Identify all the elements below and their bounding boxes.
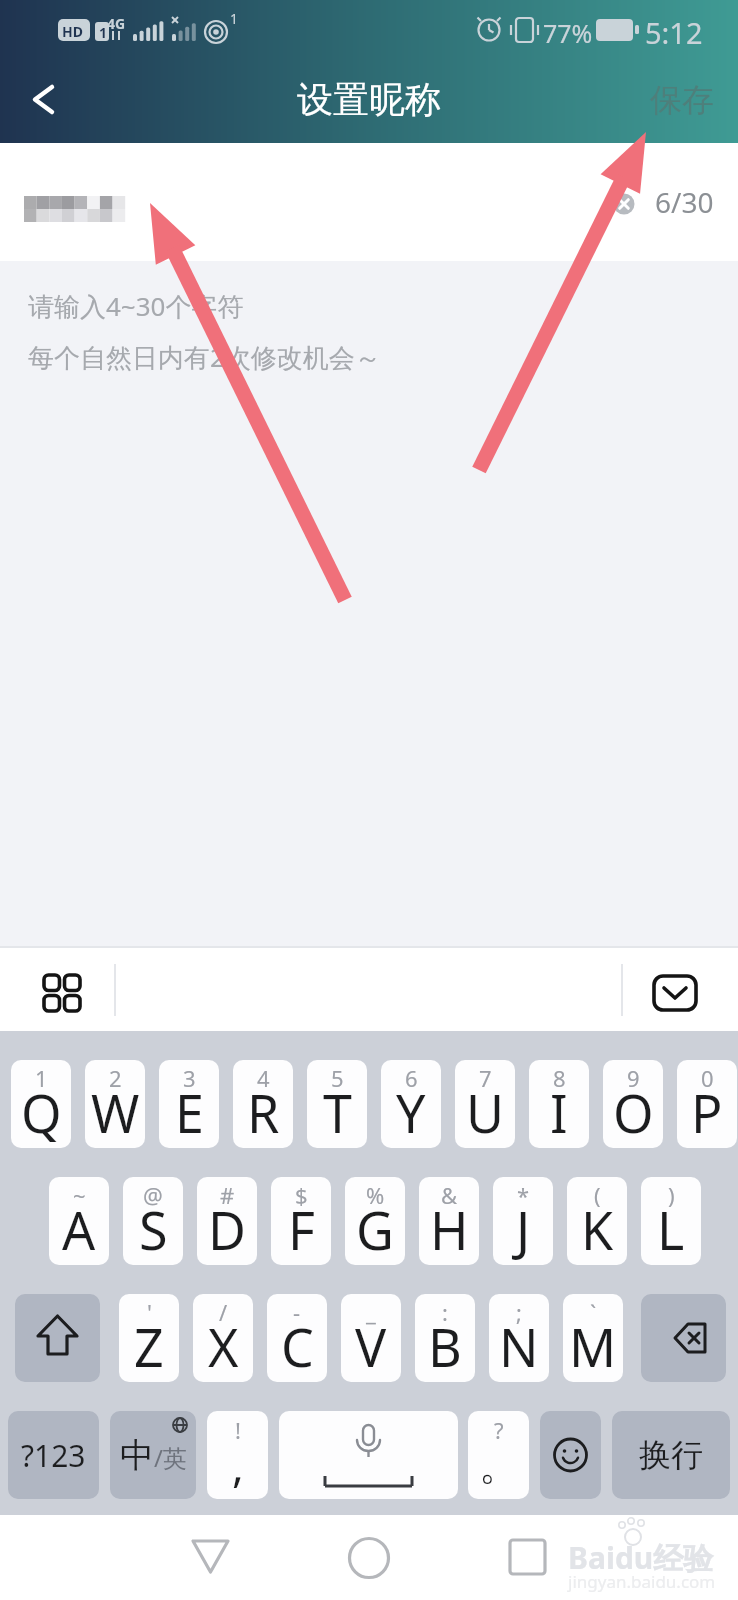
staticText: N [499,1311,539,1382]
button[interactable]: 6 [381,1060,441,1148]
staticText: J [516,1194,531,1265]
staticText: % [366,1180,385,1210]
staticText: Q [21,1077,62,1148]
staticText: 换行 [639,1435,703,1475]
button[interactable]: ! [207,1411,268,1499]
staticText: 2 [109,1063,122,1093]
staticText: ( [594,1180,601,1210]
staticText: X [208,1311,239,1382]
button[interactable]: 5 [307,1060,367,1148]
staticText: 4 [257,1063,270,1093]
staticText: W [91,1077,140,1148]
staticText: T [323,1077,352,1148]
staticText: ! [235,1415,241,1445]
button[interactable]: 2 [85,1060,145,1148]
staticText: 。 [479,1440,519,1490]
button[interactable]: 中/英 [110,1411,196,1499]
button[interactable]: 3 [159,1060,219,1148]
staticText: & [441,1180,458,1210]
staticText: HD [62,22,83,41]
staticText: Baidu经验 [568,1537,714,1578]
button[interactable] [246,1515,492,1600]
button[interactable]: $ [271,1177,331,1265]
staticText: ; [516,1297,522,1327]
staticText: jingyan.baidu.com [568,1570,716,1593]
button[interactable]: 4 [233,1060,293,1148]
staticText: Y [396,1077,426,1148]
button[interactable]: / [193,1294,253,1382]
button[interactable]: 8 [529,1060,589,1148]
button[interactable]: ) [641,1177,701,1265]
staticText: 中/英 [120,1434,187,1477]
staticText: - [293,1297,301,1327]
staticText: K [581,1194,614,1265]
staticText: A [62,1194,96,1265]
button[interactable]: ' [119,1294,179,1382]
staticText: ~ [73,1180,86,1210]
button[interactable] [540,1411,601,1499]
button[interactable]: - [267,1294,327,1382]
staticText: 77% [543,16,593,50]
button[interactable]: 9 [603,1060,663,1148]
staticText: ' [147,1297,152,1327]
button[interactable] [492,1515,738,1600]
staticText: / [219,1297,228,1327]
staticText: O [613,1077,654,1148]
staticText: I [550,1077,568,1148]
staticText: 每个自然日内有2次修改机会～ [28,339,381,375]
button[interactable]: 1 [11,1060,71,1148]
button[interactable]: ( [567,1177,627,1265]
staticText: G [356,1194,394,1265]
button[interactable]: % [345,1177,405,1265]
staticText: 1 [99,23,108,42]
staticText: * [517,1180,530,1210]
staticText: 请输入4~30个字符 [28,288,244,324]
staticText: _ [366,1297,376,1327]
staticText: 设置昵称 [297,77,441,122]
staticText: 4G [107,14,126,33]
staticText: # [220,1180,235,1210]
button[interactable]: # [197,1177,257,1265]
staticText: 5:12 [645,13,703,52]
button[interactable] [15,1294,100,1382]
staticText: R [247,1077,280,1148]
button[interactable]: ? [468,1411,529,1499]
staticText: 9 [627,1063,640,1093]
button[interactable]: ` [563,1294,623,1382]
staticText: 7 [479,1063,492,1093]
button[interactable]: 0 [677,1060,737,1148]
button[interactable]: & [419,1177,479,1265]
button[interactable]: _ [341,1294,401,1382]
staticText: H [430,1194,469,1265]
staticText: 6 [405,1063,418,1093]
button[interactable]: 7 [455,1060,515,1148]
staticText: F [288,1194,315,1265]
staticText: : [442,1297,448,1327]
button[interactable] [0,1515,246,1600]
staticText: 3 [183,1063,196,1093]
button[interactable] [279,1411,458,1499]
button[interactable]: * [493,1177,553,1265]
staticText: 保存 [650,80,714,120]
button[interactable]: 6/30 [0,143,738,261]
button[interactable] [641,1294,726,1382]
staticText: ? [494,1415,504,1445]
staticText: C [281,1311,314,1382]
button[interactable]: ; [489,1294,549,1382]
button[interactable]: @ [123,1177,183,1265]
staticText: 0 [701,1063,714,1093]
button[interactable]: ?123 [8,1411,99,1499]
staticText: L [657,1194,685,1265]
staticText: 1 [35,1063,48,1093]
staticText: B [428,1311,462,1382]
staticText: ?123 [21,1435,86,1476]
staticText: D [208,1194,246,1265]
button[interactable]: 保存 [650,80,714,120]
button[interactable]: ~ [49,1177,109,1265]
button[interactable]: : [415,1294,475,1382]
button[interactable]: 换行 [612,1411,730,1499]
button[interactable] [0,946,120,1031]
staticText: ) [668,1180,675,1210]
button[interactable] [0,56,60,143]
staticText: 5 [331,1063,344,1093]
